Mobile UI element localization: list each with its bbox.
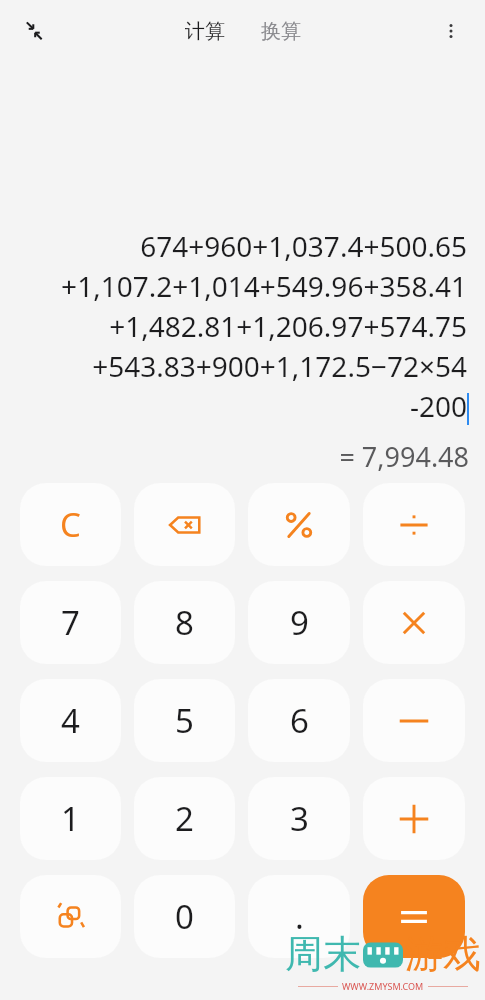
- button[interactable]: 1: [20, 777, 121, 860]
- button[interactable]: 计算: [179, 11, 231, 52]
- button[interactable]: Multiply: [363, 581, 465, 664]
- staticText: 换算: [261, 19, 301, 44]
- button[interactable]: Collapse: [10, 7, 58, 55]
- button[interactable]: Backspace: [134, 483, 235, 566]
- staticText: 7: [61, 600, 80, 645]
- staticText: 计算: [185, 19, 225, 44]
- button[interactable]: 5: [134, 679, 235, 762]
- button[interactable]: 3: [248, 777, 350, 860]
- staticText: 4: [61, 698, 80, 743]
- staticText: WWW.ZMYSM.COM: [342, 980, 424, 992]
- button[interactable]: 换算: [255, 11, 307, 52]
- button[interactable]: 2: [134, 777, 235, 860]
- staticText: .: [295, 894, 304, 939]
- button[interactable]: 0: [134, 875, 235, 958]
- staticText: 8: [175, 600, 194, 645]
- staticText: 6: [290, 698, 309, 743]
- button[interactable]: 9: [248, 581, 350, 664]
- button[interactable]: 4: [20, 679, 121, 762]
- button[interactable]: 7: [20, 581, 121, 664]
- button[interactable]: Equals: [363, 875, 465, 958]
- button[interactable]: More options: [427, 7, 475, 55]
- staticText: 0: [175, 894, 194, 939]
- button[interactable]: .: [248, 875, 350, 958]
- button[interactable]: History: [20, 875, 121, 958]
- staticText: 3: [290, 796, 309, 841]
- staticText: 5: [175, 698, 194, 743]
- button[interactable]: 8: [134, 581, 235, 664]
- staticText: 周末: [285, 930, 361, 978]
- button[interactable]: Divide: [363, 483, 465, 566]
- staticText: C: [60, 502, 81, 547]
- button[interactable]: Minus: [363, 679, 465, 762]
- staticText: 1: [61, 796, 80, 841]
- button[interactable]: 6: [248, 679, 350, 762]
- staticText: = 7,994.48: [339, 438, 469, 475]
- staticText: 游戏: [405, 930, 481, 978]
- button[interactable]: Plus: [363, 777, 465, 860]
- staticText: 9: [290, 600, 309, 645]
- staticText: 2: [175, 796, 194, 841]
- button[interactable]: Percent: [248, 483, 350, 566]
- staticText: 674+960+1,037.4+500.65 +1,107.2+1,014+54…: [61, 227, 467, 426]
- button[interactable]: C: [20, 483, 121, 566]
